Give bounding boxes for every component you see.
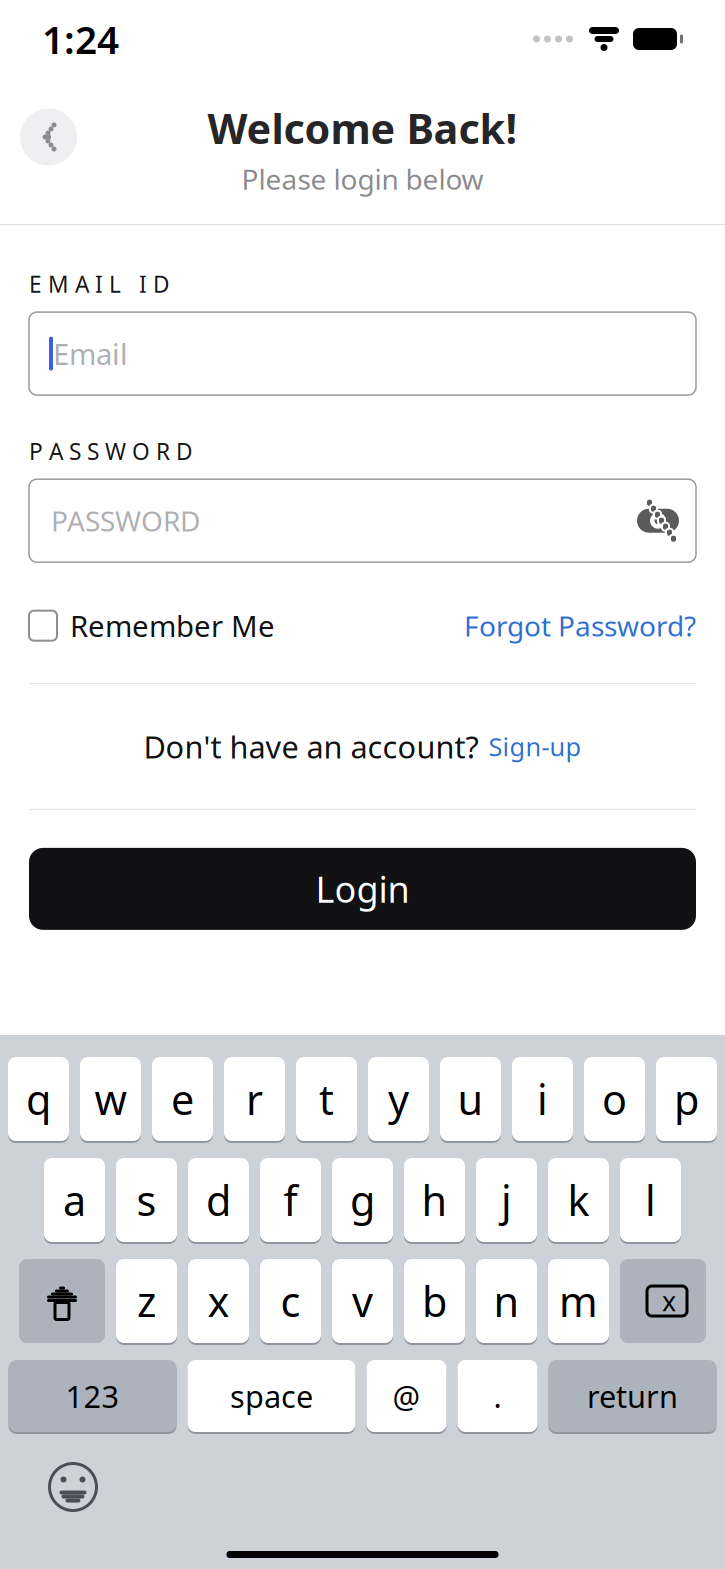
- staticText: h: [421, 1173, 447, 1227]
- button[interactable]: u: [440, 1055, 501, 1143]
- button[interactable]: c: [260, 1257, 321, 1345]
- button[interactable]: Forgot Password?: [464, 597, 696, 654]
- staticText: x: [662, 1283, 676, 1319]
- button[interactable]: Show password: [632, 495, 684, 547]
- staticText: q: [26, 1072, 51, 1126]
- staticText: Welcome Back!: [207, 100, 517, 155]
- staticText: 1:24: [42, 13, 119, 65]
- button[interactable]: r: [224, 1055, 285, 1143]
- staticText: l: [645, 1173, 656, 1227]
- button[interactable]: Shift: [19, 1257, 105, 1345]
- staticText: f: [283, 1173, 297, 1227]
- staticText: Don't have an account?: [143, 726, 478, 767]
- button[interactable]: z: [116, 1257, 177, 1345]
- button[interactable]: m: [548, 1257, 609, 1345]
- staticText: t: [319, 1072, 334, 1126]
- button[interactable]: e: [152, 1055, 213, 1143]
- staticText: s: [136, 1173, 156, 1227]
- button[interactable]: Emoji keyboard: [44, 1458, 102, 1516]
- button[interactable]: q: [8, 1055, 69, 1143]
- staticText: Forgot Password?: [464, 607, 696, 644]
- button[interactable]: l: [620, 1156, 681, 1244]
- staticText: a: [63, 1173, 86, 1227]
- button[interactable]: g: [332, 1156, 393, 1244]
- button[interactable]: Login: [29, 848, 696, 930]
- staticText: P A S S W O R D: [29, 436, 193, 466]
- staticText: i: [537, 1072, 548, 1126]
- button[interactable]: o: [584, 1055, 645, 1143]
- button[interactable]: Remember Me: [29, 596, 275, 655]
- button[interactable]: return: [548, 1358, 716, 1434]
- button[interactable]: f: [260, 1156, 321, 1244]
- staticText: Sign-up: [488, 730, 581, 763]
- button[interactable]: b: [404, 1257, 465, 1345]
- staticText: z: [137, 1274, 156, 1328]
- button[interactable]: Don't have an account?: [29, 706, 696, 787]
- staticText: y: [388, 1072, 409, 1126]
- staticText: Login: [315, 865, 409, 913]
- button[interactable]: Back: [20, 108, 77, 165]
- button[interactable]: w: [80, 1055, 141, 1143]
- staticText: m: [559, 1274, 598, 1328]
- staticText: @: [392, 1376, 420, 1416]
- button[interactable]: i: [512, 1055, 573, 1143]
- staticText: k: [567, 1173, 589, 1227]
- staticText: .: [493, 1376, 501, 1416]
- staticText: j: [501, 1173, 512, 1227]
- button[interactable]: d: [188, 1156, 249, 1244]
- button[interactable]: s: [116, 1156, 177, 1244]
- staticText: n: [493, 1274, 519, 1328]
- staticText: x: [207, 1274, 229, 1328]
- staticText: Please login below: [241, 160, 483, 198]
- staticText: E M A I L I D: [29, 269, 170, 299]
- button[interactable]: x: [188, 1257, 249, 1345]
- staticText: c: [280, 1274, 300, 1328]
- button[interactable]: h: [404, 1156, 465, 1244]
- staticText: Remember Me: [70, 606, 275, 645]
- button[interactable]: a: [44, 1156, 105, 1244]
- staticText: 123: [65, 1376, 119, 1416]
- staticText: g: [350, 1173, 375, 1227]
- staticText: w: [94, 1072, 126, 1126]
- staticText: v: [352, 1274, 373, 1328]
- staticText: space: [230, 1376, 313, 1416]
- staticText: d: [206, 1173, 231, 1227]
- staticText: PASSWORD: [51, 502, 200, 539]
- button[interactable]: p: [656, 1055, 717, 1143]
- staticText: u: [457, 1072, 483, 1126]
- button[interactable]: Delete: [620, 1257, 706, 1345]
- button[interactable]: k: [548, 1156, 609, 1244]
- button[interactable]: y: [368, 1055, 429, 1143]
- button[interactable]: 123: [8, 1358, 176, 1434]
- staticText: p: [674, 1072, 699, 1126]
- staticText: Email: [53, 334, 128, 373]
- button[interactable]: .: [457, 1358, 537, 1434]
- button[interactable]: t: [296, 1055, 357, 1143]
- button[interactable]: j: [476, 1156, 537, 1244]
- staticText: e: [171, 1072, 194, 1126]
- staticText: r: [246, 1072, 263, 1126]
- staticText: b: [422, 1274, 447, 1328]
- button[interactable]: v: [332, 1257, 393, 1345]
- button[interactable]: n: [476, 1257, 537, 1345]
- button[interactable]: @: [366, 1358, 446, 1434]
- staticText: o: [602, 1072, 627, 1126]
- button[interactable]: space: [187, 1358, 355, 1434]
- staticText: return: [587, 1376, 678, 1416]
